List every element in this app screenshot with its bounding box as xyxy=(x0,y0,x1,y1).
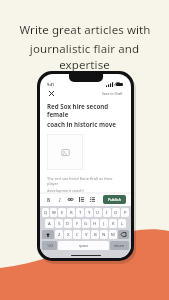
staticText: T xyxy=(79,210,82,216)
staticText: M xyxy=(111,232,115,238)
staticText: return xyxy=(114,243,125,248)
button[interactable]: Shift xyxy=(42,230,54,239)
staticText: C xyxy=(76,232,79,238)
staticText: J xyxy=(103,221,105,227)
staticText: G xyxy=(84,221,88,227)
button[interactable]: U xyxy=(94,208,102,217)
staticText: Publish xyxy=(108,197,121,202)
staticText: D xyxy=(66,221,70,227)
staticText: W xyxy=(52,210,56,216)
button[interactable]: Z xyxy=(55,230,63,239)
staticText: X xyxy=(67,232,70,238)
staticText: Write great articles with xyxy=(19,22,151,38)
staticText: The red sox hired Katie Krall as their p… xyxy=(47,176,124,186)
button[interactable]: V xyxy=(82,230,90,239)
button[interactable]: R xyxy=(67,208,75,217)
button[interactable]: S xyxy=(55,219,63,228)
staticText: S xyxy=(58,221,61,227)
staticText: E xyxy=(61,210,64,216)
button[interactable]: 123 xyxy=(42,241,57,250)
button[interactable]: G xyxy=(82,219,90,228)
staticText: P xyxy=(124,210,127,216)
button[interactable]: Quote xyxy=(78,196,85,203)
button[interactable]: K xyxy=(109,219,117,228)
button[interactable]: P xyxy=(121,208,129,217)
button[interactable]: L xyxy=(118,219,126,228)
staticText: R xyxy=(70,210,73,216)
button[interactable]: W xyxy=(50,208,57,217)
staticText: B xyxy=(94,232,97,238)
button[interactable]: Save to Draft xyxy=(101,90,124,97)
button[interactable]: I xyxy=(56,196,63,203)
staticText: N xyxy=(102,232,106,238)
button[interactable]: A xyxy=(45,219,54,228)
staticText: Y xyxy=(88,210,91,216)
button[interactable]: B xyxy=(91,230,99,239)
staticText: 9:41 xyxy=(47,82,55,87)
staticText: K xyxy=(112,221,115,227)
staticText: 123 xyxy=(47,243,53,248)
button[interactable]: Close xyxy=(47,89,56,98)
button[interactable]: B xyxy=(45,196,52,203)
button[interactable]: I xyxy=(103,208,111,217)
staticText: H xyxy=(93,221,97,227)
staticText: Z xyxy=(58,232,61,238)
staticText: Red Sox hire second female xyxy=(47,102,124,118)
staticText: I xyxy=(59,197,61,203)
button[interactable]: M xyxy=(109,230,117,239)
staticText: journalistic flair and expertise xyxy=(12,41,157,73)
button[interactable]: Y xyxy=(85,208,93,217)
button[interactable]: Backspace xyxy=(118,230,129,239)
button[interactable]: J xyxy=(100,219,108,228)
button[interactable]: Publish xyxy=(103,195,126,204)
button[interactable]: T xyxy=(76,208,84,217)
button[interactable]: List xyxy=(89,196,96,203)
staticText: space xyxy=(79,243,89,248)
button[interactable]: D xyxy=(64,219,72,228)
staticText: Save to Draft xyxy=(102,91,123,96)
staticText: F xyxy=(76,221,79,227)
staticText: I xyxy=(106,210,108,216)
staticText: Q xyxy=(44,210,48,216)
staticText: L xyxy=(121,221,124,227)
button[interactable]: X xyxy=(64,230,72,239)
button[interactable]: C xyxy=(73,230,81,239)
button[interactable]: return xyxy=(110,241,129,250)
staticText: V xyxy=(85,232,88,238)
button[interactable]: N xyxy=(100,230,108,239)
staticText: development coach! xyxy=(47,188,84,193)
staticText: U xyxy=(96,210,100,216)
button[interactable]: Link xyxy=(67,196,74,203)
button[interactable]: space xyxy=(58,241,109,250)
button[interactable]: F xyxy=(73,219,81,228)
button[interactable]: O xyxy=(112,208,120,217)
staticText: coach in historic move xyxy=(47,120,117,128)
button[interactable]: Add image xyxy=(47,134,83,170)
staticText: A xyxy=(48,221,51,227)
staticText: B xyxy=(47,197,50,203)
button[interactable]: E xyxy=(58,208,66,217)
button[interactable]: H xyxy=(91,219,99,228)
button[interactable]: Q xyxy=(42,208,49,217)
staticText: O xyxy=(114,210,118,216)
